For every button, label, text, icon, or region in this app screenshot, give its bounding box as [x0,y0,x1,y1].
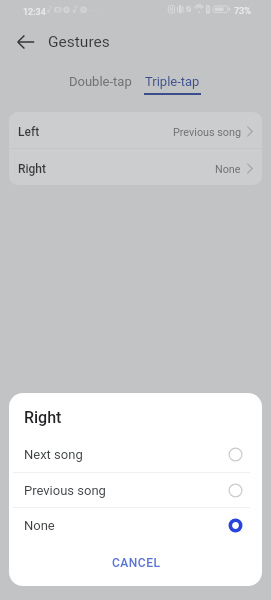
button[interactable]: Left [9,112,262,148]
staticText: 12:34 [23,7,46,18]
staticText: Left [18,125,40,139]
staticText: Gestures [48,33,110,51]
staticText: Right [24,408,62,427]
button[interactable]: Triple-tap [137,64,207,96]
button[interactable]: None [9,507,262,543]
button[interactable]: Next song [9,436,262,472]
staticText: Previous song [24,483,106,498]
button[interactable]: Previous song [9,472,262,508]
staticText: None [215,163,241,176]
button[interactable]: Navigate up [8,24,44,60]
button[interactable]: Right [9,149,262,185]
staticText: Right [18,162,47,176]
staticText: None [24,518,55,533]
staticText: Triple-tap [145,74,200,89]
staticText: Previous song [173,126,241,139]
staticText: Next song [24,447,83,462]
staticText: 73% [234,6,251,17]
button[interactable]: Double-tap [50,64,150,94]
button[interactable]: CANCEL [104,550,168,576]
staticText: CANCEL [112,556,161,570]
staticText: Double-tap [69,74,132,89]
